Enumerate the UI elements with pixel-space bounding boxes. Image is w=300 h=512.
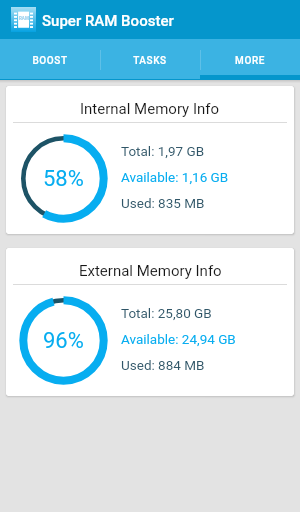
- staticText: Total: 1,97 GB: [121, 143, 205, 159]
- staticText: 96%: [43, 328, 84, 354]
- staticText: Available: 24,94 GB: [121, 331, 236, 347]
- button[interactable]: TASKS: [100, 39, 200, 80]
- staticText: Used: 835 MB: [121, 195, 205, 211]
- staticText: Internal Memory Info: [80, 100, 220, 118]
- button[interactable]: BOOST: [0, 39, 100, 80]
- staticText: MORE: [235, 55, 265, 67]
- staticText: Super RAM Booster: [42, 12, 174, 30]
- staticText: TASKS: [133, 55, 167, 67]
- staticText: External Memory Info: [79, 262, 222, 280]
- staticText: BOOST: [32, 55, 68, 67]
- staticText: Total: 25,80 GB: [121, 305, 212, 321]
- staticText: Available: 1,16 GB: [121, 169, 229, 185]
- staticText: Used: 884 MB: [121, 357, 205, 373]
- staticText: RAM: [19, 16, 29, 21]
- staticText: 58%: [43, 166, 84, 192]
- button[interactable]: Super RAM Booster icon: [11, 7, 36, 32]
- button[interactable]: MORE: [200, 39, 300, 80]
